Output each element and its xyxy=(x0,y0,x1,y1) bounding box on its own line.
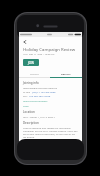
staticText: Location xyxy=(23,110,35,114)
button[interactable]: More phone numbers xyxy=(23,99,48,102)
button[interactable]: DETAILS xyxy=(50,69,82,77)
staticText: (US) +1 123 456 7890 xyxy=(32,90,56,93)
staticText: Joining info xyxy=(23,81,39,85)
button[interactable]: Back xyxy=(21,38,29,46)
staticText: MTV – Room 1, NYC-4 Floor 1 xyxy=(23,115,56,118)
staticText: JOIN xyxy=(28,61,34,65)
staticText: Description xyxy=(23,121,39,125)
staticText: or dial xyxy=(23,90,32,93)
staticText: meet.google.com/abc-defg-hij xyxy=(23,86,57,89)
button[interactable]: PEOPLE xyxy=(19,69,50,77)
staticText: Holiday Campaign Review xyxy=(23,46,76,52)
staticText: More phone numbers xyxy=(23,99,48,102)
staticText: 123 456 789 1234# xyxy=(29,94,51,97)
staticText: Time to regroup and review our upcoming … xyxy=(23,126,78,138)
staticText: DETAILS xyxy=(61,72,71,75)
staticText: PEOPLE xyxy=(30,72,39,75)
staticText: Copy xyxy=(23,104,29,107)
staticText: PIN: xyxy=(23,94,29,97)
button[interactable]: Copy xyxy=(23,104,29,107)
button[interactable]: JOIN xyxy=(23,59,39,66)
staticText: Mon xyxy=(23,53,28,56)
staticText: Dec 11 9:00 – 10:00 AM xyxy=(29,53,55,56)
